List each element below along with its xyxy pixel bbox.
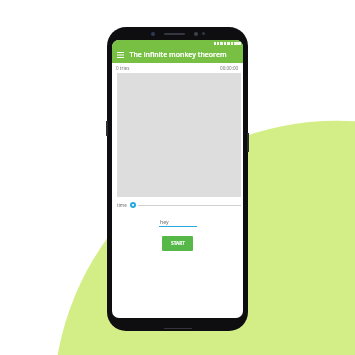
button[interactable]: START [162, 236, 193, 251]
button[interactable]: Time mode selected [130, 202, 136, 208]
staticText: 00:00:00 [220, 65, 239, 71]
staticText: 0 tries [116, 65, 130, 71]
staticText: The infinite monkey theorem [129, 50, 227, 60]
button[interactable]: hey [159, 218, 197, 227]
staticText: START [171, 240, 185, 247]
button[interactable]: Open navigation drawer [114, 49, 126, 61]
staticText: hey [160, 218, 169, 225]
staticText: time [117, 202, 127, 208]
